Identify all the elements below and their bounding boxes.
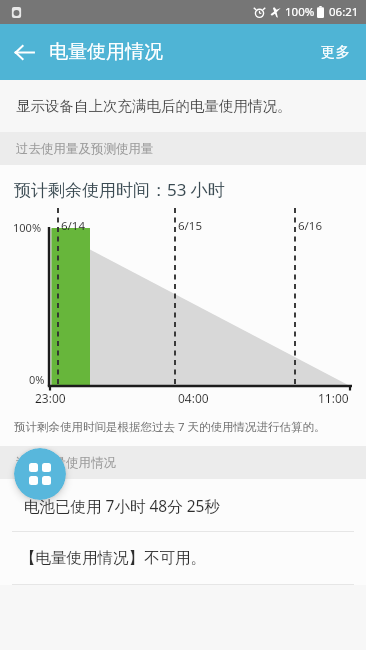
staticText: 100%	[13, 220, 42, 235]
staticText: 23:00	[35, 390, 66, 406]
staticText: 电量使用情况	[49, 40, 163, 64]
button[interactable]: 【电量使用情况】不可用。	[0, 532, 366, 584]
staticText: 显示设备自上次充满电后的电量使用情况。	[16, 97, 292, 115]
staticText: 6/16	[298, 218, 323, 234]
staticText: 06:21	[329, 4, 359, 20]
staticText: 更多	[321, 43, 350, 61]
staticText: 0%	[29, 372, 45, 387]
button[interactable]: 更多	[305, 27, 366, 77]
staticText: 电池已使用 7小时 48分 25秒	[24, 495, 220, 516]
staticText: 04:00	[178, 390, 209, 406]
staticText: 【电量使用情况】不可用。	[20, 548, 206, 568]
staticText: 6/14	[61, 218, 86, 234]
staticText: 6/15	[178, 218, 203, 234]
staticText: 100%	[285, 4, 315, 20]
staticText: 11:00	[318, 390, 349, 406]
staticText: 过去使用量及预测使用量	[16, 141, 154, 157]
button[interactable]: Back	[0, 28, 48, 76]
staticText: 预计剩余使用时间：53 小时	[14, 178, 225, 201]
button[interactable]: Apps	[14, 448, 66, 500]
button[interactable]: 电池已使用 7小时 48分 25秒	[0, 479, 366, 531]
staticText: 预计剩余使用时间是根据您过去 7 天的使用情况进行估算的。	[14, 419, 326, 435]
staticText: 近期电量使用情况	[16, 455, 116, 471]
